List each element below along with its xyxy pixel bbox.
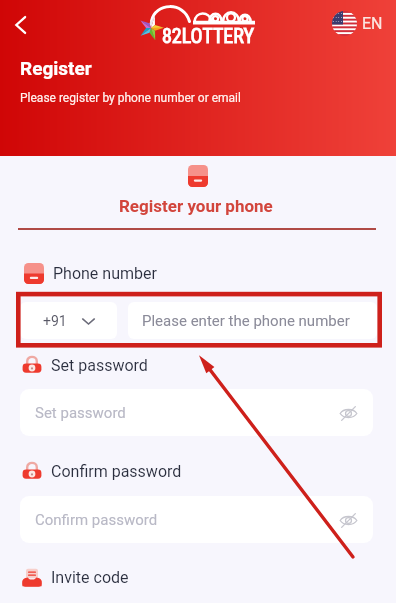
button[interactable]: +91 xyxy=(20,302,117,339)
button[interactable]: Set password xyxy=(20,389,373,436)
staticText: Please enter the phone number xyxy=(142,312,350,330)
staticText: Please register by phone number or email xyxy=(20,91,241,105)
button[interactable]: Set password xyxy=(22,353,148,377)
button[interactable]: Invite code xyxy=(22,565,129,589)
staticText: 82LOTTERY xyxy=(162,24,254,47)
button[interactable]: Phone number xyxy=(24,261,157,285)
staticText: Set password xyxy=(35,404,126,422)
staticText: +91 xyxy=(43,313,67,329)
button[interactable]: Language EN xyxy=(330,9,385,38)
staticText: Confirm password xyxy=(51,462,182,481)
button[interactable]: Back xyxy=(2,7,38,43)
staticText: Confirm password xyxy=(35,511,158,529)
staticText: Register xyxy=(20,57,92,79)
button[interactable]: Show password xyxy=(335,507,361,533)
staticText: Invite code xyxy=(51,568,129,587)
button[interactable]: Show password xyxy=(335,400,361,426)
staticText: EN xyxy=(362,14,383,33)
staticText: Phone number xyxy=(53,264,157,283)
staticText: Set password xyxy=(51,356,148,375)
button[interactable]: Confirm password xyxy=(22,459,182,483)
button[interactable]: Confirm password xyxy=(20,496,373,543)
button[interactable]: Please enter the phone number xyxy=(128,302,377,339)
staticText: Register your phone xyxy=(119,196,273,216)
